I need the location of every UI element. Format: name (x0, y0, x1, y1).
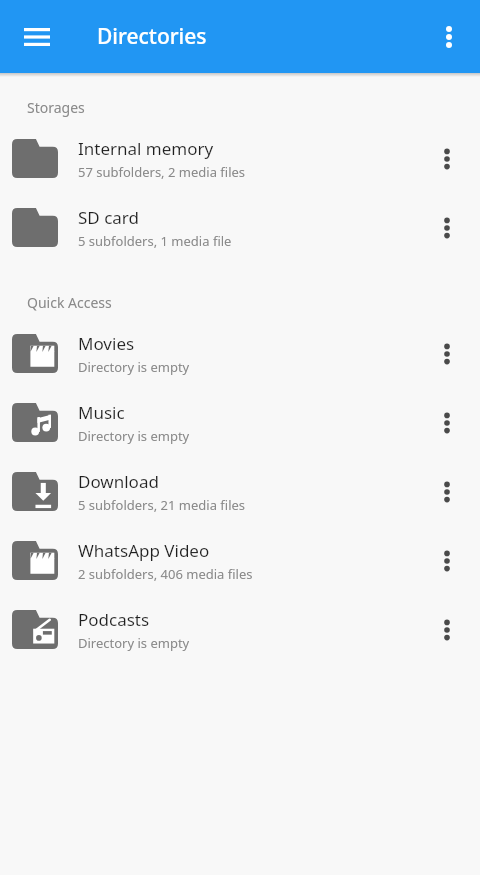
button[interactable]: More options for WhatsApp Video (423, 537, 471, 585)
button[interactable]: Open navigation menu (13, 13, 61, 61)
button[interactable]: WhatsApp Video (0, 526, 480, 595)
staticText: Music (78, 401, 125, 424)
staticText: Internal memory (78, 137, 214, 160)
button[interactable]: Download (0, 457, 480, 526)
staticText: 5 subfolders, 21 media files (78, 496, 246, 514)
button[interactable]: SD card (0, 193, 480, 262)
button[interactable]: More options for Download (423, 468, 471, 516)
staticText: Quick Access (27, 293, 112, 312)
staticText: 57 subfolders, 2 media files (78, 163, 246, 181)
button[interactable]: Music (0, 388, 480, 457)
button[interactable]: More options for Music (423, 399, 471, 447)
staticText: 5 subfolders, 1 media file (78, 232, 232, 250)
button[interactable]: Podcasts (0, 595, 480, 664)
button[interactable]: More options for Internal memory (423, 135, 471, 183)
staticText: Storages (27, 98, 85, 117)
button[interactable]: More options for Movies (423, 330, 471, 378)
staticText: 2 subfolders, 406 media files (78, 565, 253, 583)
staticText: Directories (97, 22, 207, 51)
staticText: WhatsApp Video (78, 539, 210, 562)
staticText: Podcasts (78, 608, 150, 631)
staticText: Directory is empty (78, 427, 190, 445)
staticText: Directory is empty (78, 358, 190, 376)
staticText: SD card (78, 206, 139, 229)
button[interactable]: Movies (0, 319, 480, 388)
button[interactable]: More options for Podcasts (423, 606, 471, 654)
button[interactable]: More options for SD card (423, 204, 471, 252)
button[interactable]: Internal memory (0, 124, 480, 193)
button[interactable]: More options (427, 15, 471, 59)
staticText: Movies (78, 332, 135, 355)
staticText: Directory is empty (78, 634, 190, 652)
staticText: Download (78, 470, 159, 493)
